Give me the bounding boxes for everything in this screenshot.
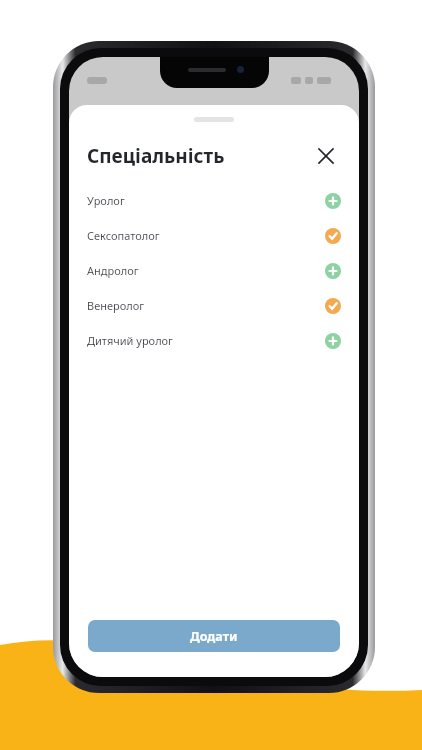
button[interactable]: Венеролог — [69, 288, 359, 323]
button[interactable]: Додати — [88, 620, 340, 652]
staticText: Додати — [190, 628, 238, 645]
staticText: Спеціальність — [87, 143, 225, 169]
staticText: Дитячий уролог — [87, 333, 173, 348]
button[interactable]: Close — [311, 141, 341, 171]
staticText: Уролог — [87, 193, 125, 208]
staticText: Сексопатолог — [87, 228, 160, 243]
button[interactable]: Уролог — [69, 183, 359, 218]
button[interactable]: Андролог — [69, 253, 359, 288]
button[interactable]: Дитячий уролог — [69, 323, 359, 358]
staticText: Венеролог — [87, 298, 145, 313]
button[interactable]: Сексопатолог — [69, 218, 359, 253]
staticText: Андролог — [87, 263, 139, 278]
